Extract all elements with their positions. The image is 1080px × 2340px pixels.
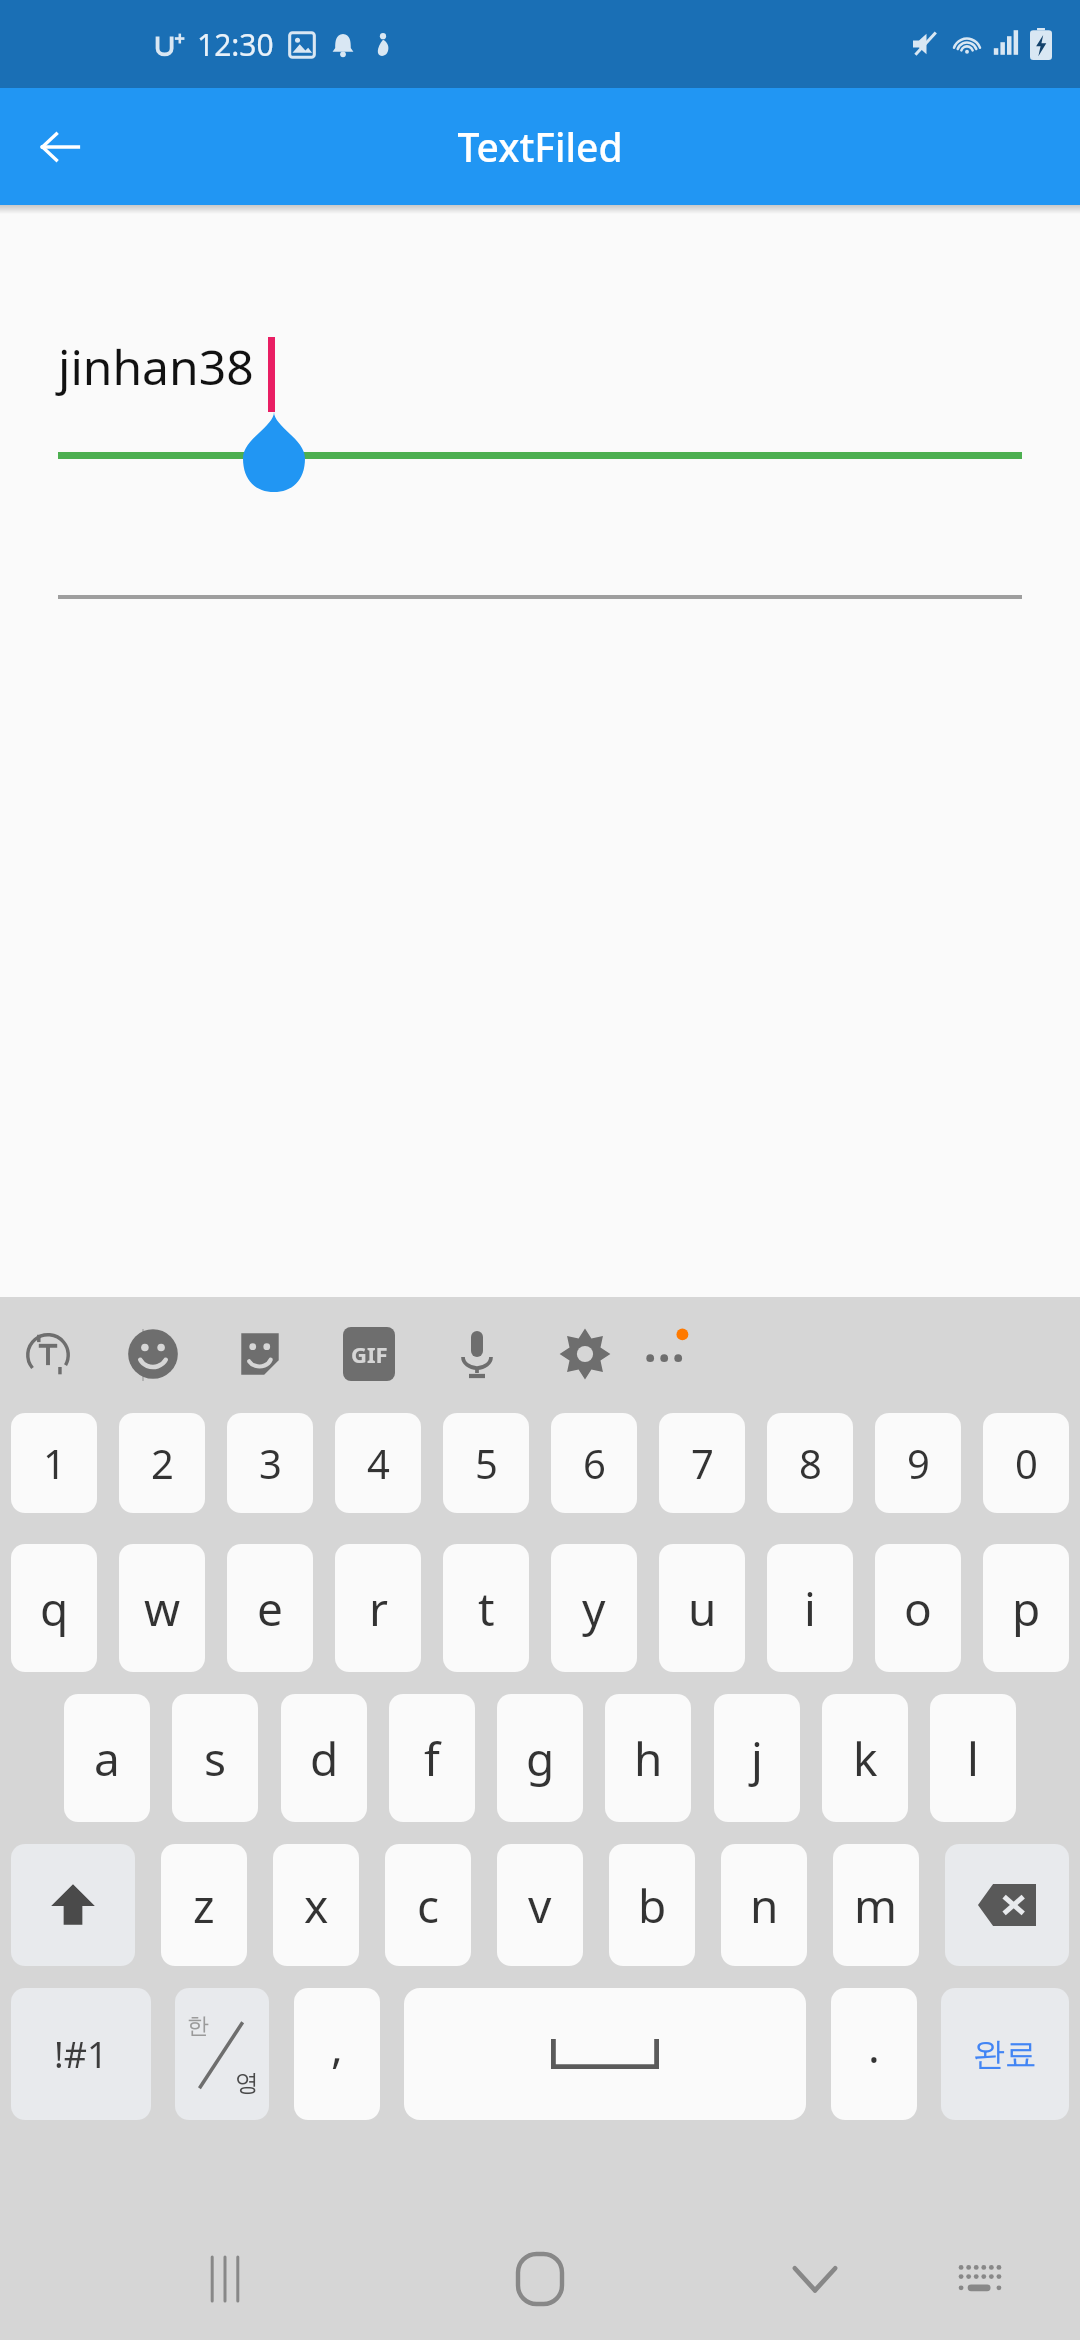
button[interactable]: q	[11, 1544, 97, 1672]
button[interactable]: Space	[404, 1988, 806, 2120]
button[interactable]: Keyboard tool	[338, 1323, 400, 1385]
button[interactable]: t	[443, 1544, 529, 1672]
button[interactable]: Emoji	[122, 1321, 188, 1387]
staticText: x	[304, 1874, 329, 1937]
button[interactable]: c	[385, 1844, 471, 1966]
button[interactable]: 4	[335, 1413, 421, 1513]
staticText: 영	[235, 2068, 259, 2098]
button[interactable]: Keyboard tool	[122, 1323, 184, 1385]
button[interactable]: Home	[495, 2234, 585, 2324]
staticText: d	[310, 1727, 339, 1790]
staticText: 5	[475, 1436, 498, 1490]
staticText: 0	[1015, 1436, 1038, 1490]
staticText: k	[853, 1727, 878, 1790]
staticText: p	[1012, 1577, 1041, 1640]
button[interactable]: 6	[551, 1413, 637, 1513]
button[interactable]: s	[172, 1694, 258, 1822]
button[interactable]: a	[64, 1694, 150, 1822]
button[interactable]: x	[273, 1844, 359, 1966]
staticText: s	[204, 1727, 227, 1790]
staticText: y	[582, 1577, 606, 1640]
staticText: 완료	[973, 2034, 1037, 2074]
button[interactable]: 2	[119, 1413, 205, 1513]
staticText: r	[369, 1577, 388, 1640]
button[interactable]: .	[831, 1988, 917, 2120]
button[interactable]: Keyboard tool	[446, 1323, 508, 1385]
button[interactable]: d	[281, 1694, 367, 1822]
button[interactable]: o	[875, 1544, 961, 1672]
button[interactable]: jinhan38	[58, 334, 1022, 454]
staticText: 7	[691, 1436, 714, 1490]
staticText: 8	[799, 1436, 822, 1490]
button[interactable]: k	[822, 1694, 908, 1822]
staticText: jinhan38	[58, 334, 254, 399]
staticText: 1	[43, 1436, 66, 1490]
button[interactable]: n	[721, 1844, 807, 1966]
button[interactable]: Translate	[20, 1327, 76, 1383]
staticText: TextFiled	[457, 120, 623, 173]
button[interactable]: z	[161, 1844, 247, 1966]
staticText: f	[424, 1727, 440, 1790]
staticText: 6	[583, 1436, 606, 1490]
staticText: n	[750, 1874, 779, 1937]
staticText: u	[688, 1577, 717, 1640]
button[interactable]: Language	[175, 1988, 269, 2120]
button[interactable]: 7	[659, 1413, 745, 1513]
button[interactable]: r	[335, 1544, 421, 1672]
button[interactable]: 5	[443, 1413, 529, 1513]
staticText: e	[257, 1577, 283, 1640]
button[interactable]: 0	[983, 1413, 1069, 1513]
button[interactable]: Switch keyboard	[940, 2239, 1020, 2319]
button[interactable]: Recents	[180, 2234, 270, 2324]
staticText: 한	[187, 2012, 209, 2040]
button[interactable]: Backspace	[945, 1844, 1069, 1966]
staticText: h	[634, 1727, 663, 1790]
staticText: i	[804, 1577, 816, 1640]
button[interactable]: f	[389, 1694, 475, 1822]
staticText: 3	[259, 1436, 282, 1490]
button[interactable]: p	[983, 1544, 1069, 1672]
staticText: 12:30	[197, 24, 274, 65]
staticText: o	[904, 1577, 932, 1640]
button[interactable]: Shift	[11, 1844, 135, 1966]
button[interactable]: m	[833, 1844, 919, 1966]
button[interactable]: u	[659, 1544, 745, 1672]
button[interactable]: i	[767, 1544, 853, 1672]
button[interactable]: h	[605, 1694, 691, 1822]
button[interactable]: j	[714, 1694, 800, 1822]
button[interactable]: y	[551, 1544, 637, 1672]
staticText: j	[751, 1727, 763, 1790]
button[interactable]: 완료	[941, 1988, 1069, 2120]
button[interactable]: Back	[24, 111, 96, 183]
button[interactable]: Keyboard tool	[554, 1323, 616, 1385]
staticText: v	[528, 1874, 552, 1937]
button[interactable]: b	[609, 1844, 695, 1966]
staticText: g	[526, 1727, 555, 1790]
staticText: c	[417, 1874, 440, 1937]
staticText: t	[478, 1577, 495, 1640]
button[interactable]: 8	[767, 1413, 853, 1513]
button[interactable]: !#1	[11, 1988, 151, 2120]
staticText: 9	[907, 1436, 930, 1490]
staticText: .	[868, 2016, 880, 2076]
staticText: w	[144, 1577, 181, 1640]
button[interactable]: ,	[294, 1988, 380, 2120]
button[interactable]: w	[119, 1544, 205, 1672]
staticText: q	[40, 1577, 69, 1640]
button[interactable]: l	[930, 1694, 1016, 1822]
button[interactable]: Hide keyboard	[770, 2234, 860, 2324]
staticText: a	[94, 1727, 120, 1790]
staticText: 2	[151, 1436, 174, 1490]
button[interactable]: v	[497, 1844, 583, 1966]
staticText: !#1	[54, 2030, 108, 2079]
button[interactable]: 3	[227, 1413, 313, 1513]
button[interactable]: g	[497, 1694, 583, 1822]
staticText: 4	[367, 1436, 390, 1490]
button[interactable]: Keyboard tool	[229, 1323, 291, 1385]
staticText: GIF	[351, 1339, 388, 1369]
button[interactable]: 1	[11, 1413, 97, 1513]
button[interactable]: More options	[632, 1319, 702, 1389]
button[interactable]: e	[227, 1544, 313, 1672]
button[interactable]: 9	[875, 1413, 961, 1513]
